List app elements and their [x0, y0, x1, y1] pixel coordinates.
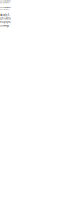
- staticText: abcdefghijklmnopqrstuvwxyz: [0, 0, 11, 3]
- staticText: abcdefghijklmnopqrstuvwxyz: [0, 6, 11, 10]
- staticText: abcdefghijklmnopqrstuvwxyz: [0, 13, 11, 27]
